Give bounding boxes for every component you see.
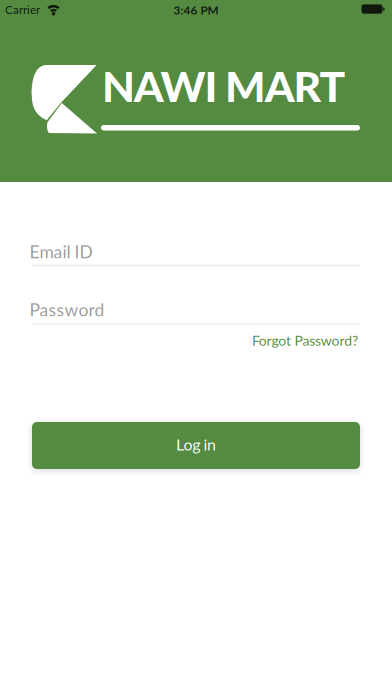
- button[interactable]: Email ID: [29, 241, 360, 266]
- button[interactable]: Forgot Password?: [252, 332, 358, 349]
- staticText: Log in: [176, 435, 216, 454]
- staticText: Forgot Password?: [252, 332, 358, 349]
- staticText: Carrier: [5, 3, 40, 16]
- button[interactable]: Password: [29, 299, 360, 325]
- staticText: Password: [29, 299, 104, 320]
- staticText: 3:46 PM: [173, 3, 218, 17]
- staticText: Email ID: [29, 241, 92, 262]
- button[interactable]: Log in: [32, 422, 360, 469]
- staticText: NAWI MART: [102, 60, 345, 111]
